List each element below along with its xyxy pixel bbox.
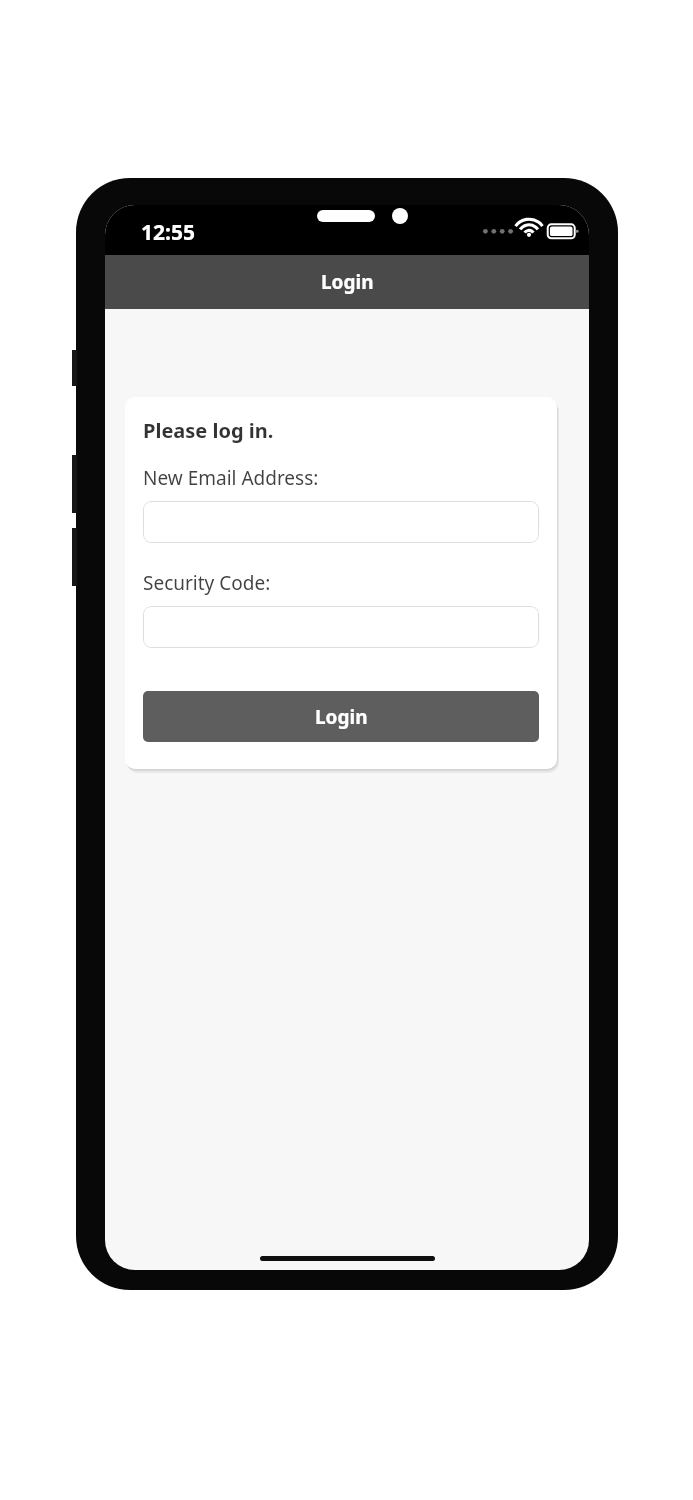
staticText: 12:55 [141, 218, 195, 247]
staticText: Please log in. [143, 417, 274, 444]
staticText: Login [315, 704, 368, 730]
staticText: New Email Address: [143, 465, 319, 491]
button[interactable]: New Email Address [143, 501, 539, 543]
staticText: Security Code: [143, 570, 271, 596]
button[interactable]: Security Code [143, 606, 539, 648]
button[interactable]: Login [143, 691, 539, 742]
staticText: Login [321, 269, 374, 295]
